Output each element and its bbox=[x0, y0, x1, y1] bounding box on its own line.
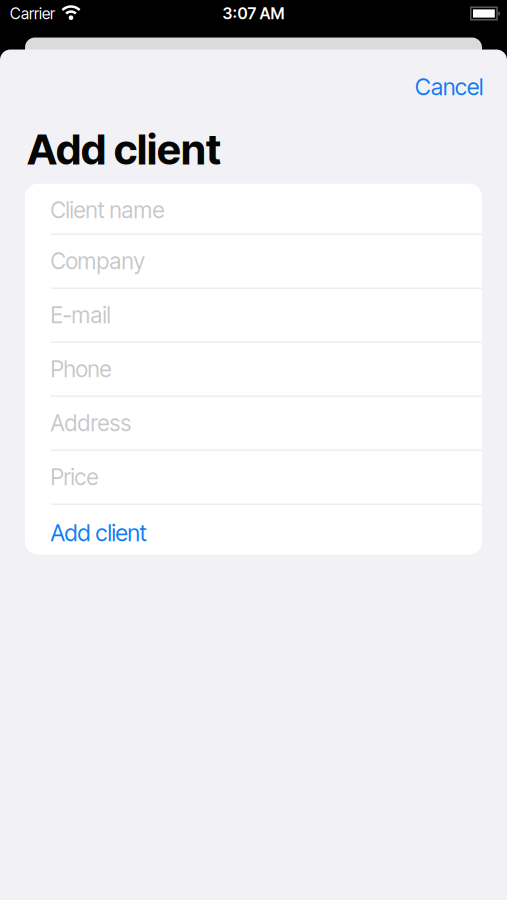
staticText: Add client bbox=[50, 519, 146, 547]
staticText: Company bbox=[50, 247, 144, 275]
button[interactable]: Address bbox=[25, 397, 482, 451]
button[interactable]: E-mail bbox=[25, 289, 482, 343]
staticText: Add client bbox=[27, 124, 221, 175]
button[interactable]: Cancel bbox=[415, 73, 483, 101]
staticText: Cancel bbox=[415, 73, 483, 101]
staticText: Price bbox=[50, 463, 98, 491]
staticText: Client name bbox=[50, 196, 164, 224]
button[interactable]: Add client bbox=[25, 505, 482, 555]
staticText: Phone bbox=[50, 355, 111, 383]
staticText: E-mail bbox=[50, 301, 110, 329]
staticText: Carrier bbox=[10, 4, 55, 23]
button[interactable]: Company bbox=[25, 235, 482, 289]
staticText: Address bbox=[50, 409, 131, 437]
button[interactable]: Client name bbox=[25, 184, 482, 235]
staticText: 3:07 AM bbox=[222, 4, 284, 23]
button[interactable]: Phone bbox=[25, 343, 482, 397]
button[interactable]: Price bbox=[25, 451, 482, 505]
